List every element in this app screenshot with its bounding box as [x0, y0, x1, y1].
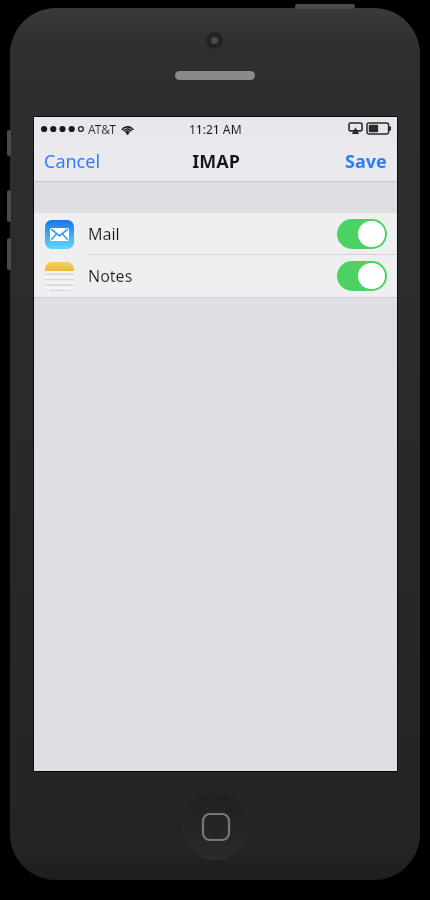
button[interactable]: Save — [335, 141, 397, 182]
staticText: Save — [345, 149, 387, 174]
staticText: Cancel — [44, 149, 101, 174]
button[interactable]: Mail — [34, 213, 397, 255]
button[interactable]: Notes — [34, 255, 397, 297]
staticText: AT&T — [88, 121, 116, 137]
button[interactable]: Toggle — [337, 219, 387, 249]
staticText: Notes — [88, 265, 133, 287]
staticText: 11:21 AM — [189, 121, 242, 137]
button[interactable]: Cancel — [34, 141, 111, 182]
button[interactable]: Toggle — [337, 261, 387, 291]
staticText: IMAP — [192, 149, 240, 174]
staticText: Mail — [88, 223, 120, 245]
